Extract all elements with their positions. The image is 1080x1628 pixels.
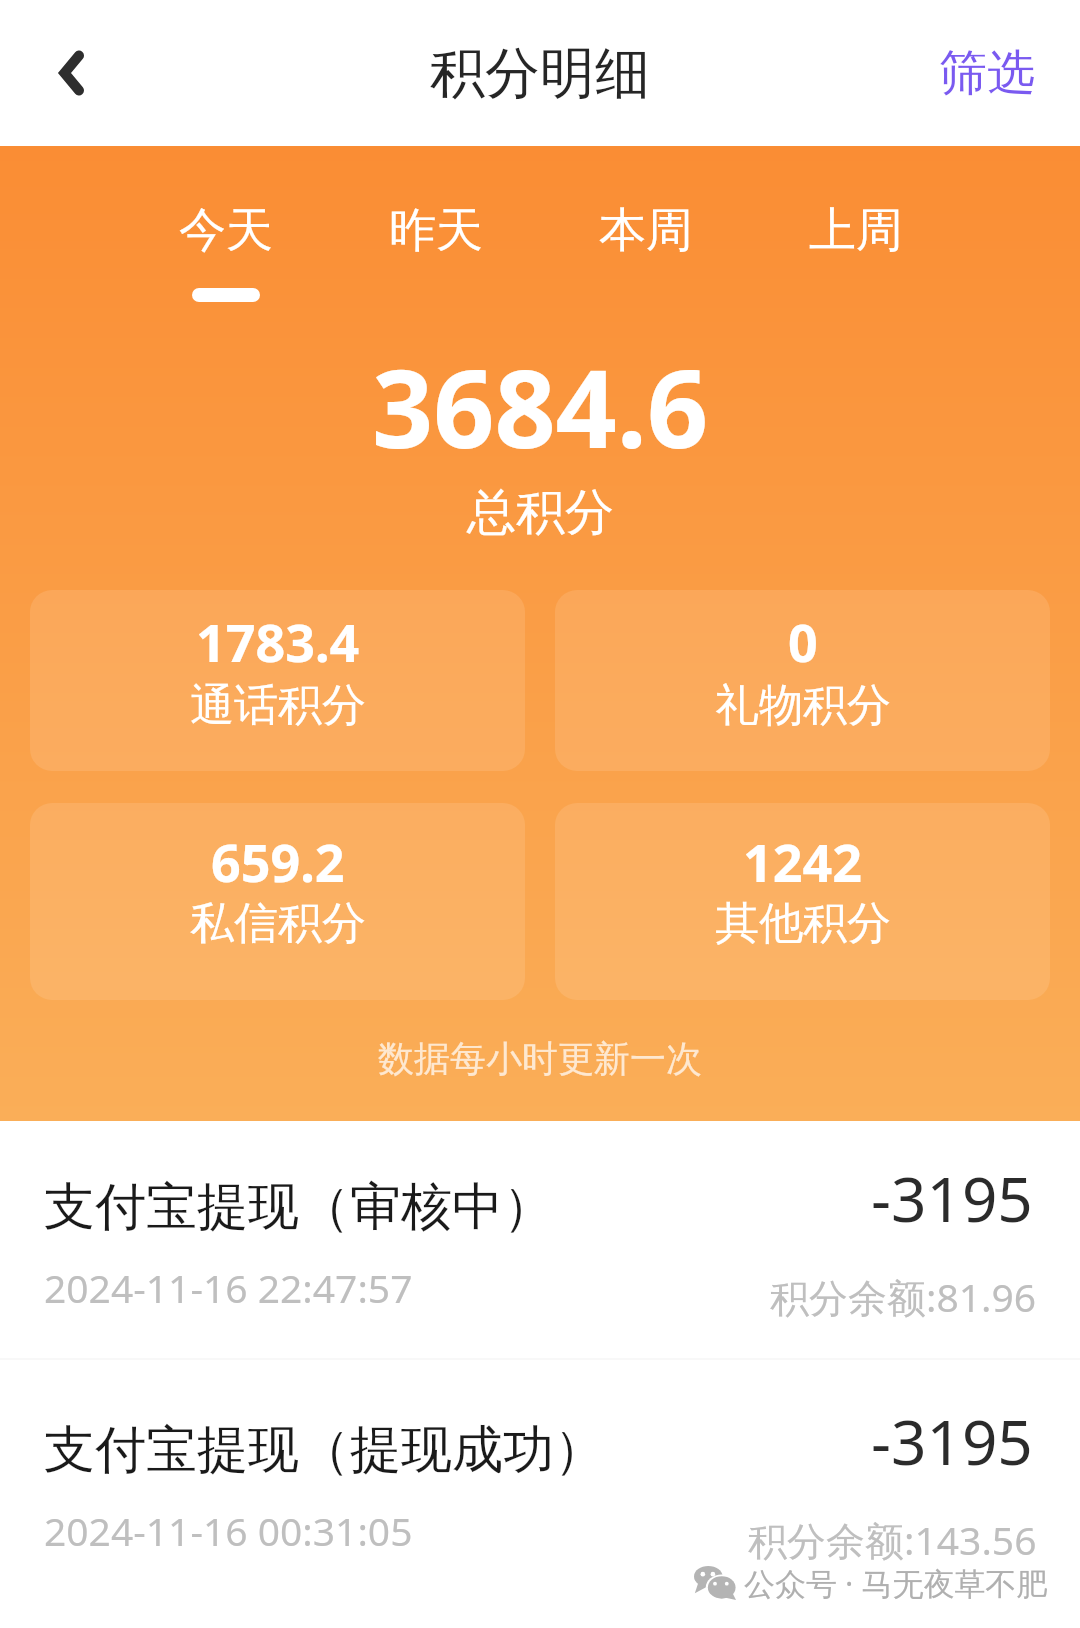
button[interactable]: 昨天: [356, 172, 516, 288]
button[interactable]: 659.2: [30, 803, 525, 1000]
staticText: 今天: [179, 201, 273, 260]
staticText: 积分余额:143.56: [748, 1513, 1037, 1566]
staticText: 私信积分: [190, 896, 366, 951]
staticText: -3195: [871, 1156, 1033, 1240]
staticText: 本周: [599, 201, 693, 260]
staticText: 0: [788, 606, 818, 677]
staticText: 公众号 · 马无夜草不肥: [744, 1562, 1048, 1604]
staticText: 总积分: [467, 482, 614, 544]
staticText: 积分明细: [430, 39, 650, 108]
button[interactable]: 今天: [146, 172, 306, 288]
button[interactable]: 筛选: [899, 19, 1080, 127]
button[interactable]: 支付宝提现（审核中）: [0, 1119, 1080, 1361]
staticText: 659.2: [211, 826, 345, 897]
button[interactable]: 1783.4: [30, 590, 525, 771]
staticText: 支付宝提现（审核中）: [44, 1175, 554, 1239]
staticText: -3195: [871, 1399, 1033, 1483]
staticText: 支付宝提现（提现成功）: [44, 1418, 605, 1482]
staticText: 礼物积分: [715, 678, 891, 733]
staticText: 2024-11-16 00:31:05: [44, 1504, 413, 1557]
staticText: 数据每小时更新一次: [378, 1036, 702, 1081]
staticText: 1783.4: [196, 606, 360, 677]
staticText: 2024-11-16 22:47:57: [44, 1261, 413, 1314]
button[interactable]: 0: [555, 590, 1050, 771]
staticText: 上周: [809, 201, 903, 260]
staticText: 通话积分: [190, 678, 366, 733]
staticText: 筛选: [939, 43, 1035, 103]
button[interactable]: Back: [24, 25, 120, 121]
button[interactable]: 本周: [566, 172, 726, 288]
staticText: 其他积分: [715, 896, 891, 951]
button[interactable]: 1242: [555, 803, 1050, 1000]
button[interactable]: 上周: [776, 172, 936, 288]
staticText: 3684.6: [372, 334, 709, 480]
staticText: 积分余额:81.96: [770, 1270, 1037, 1323]
button[interactable]: 支付宝提现（提现成功）: [0, 1362, 1080, 1604]
staticText: 昨天: [389, 201, 483, 260]
staticText: 1242: [743, 826, 862, 897]
